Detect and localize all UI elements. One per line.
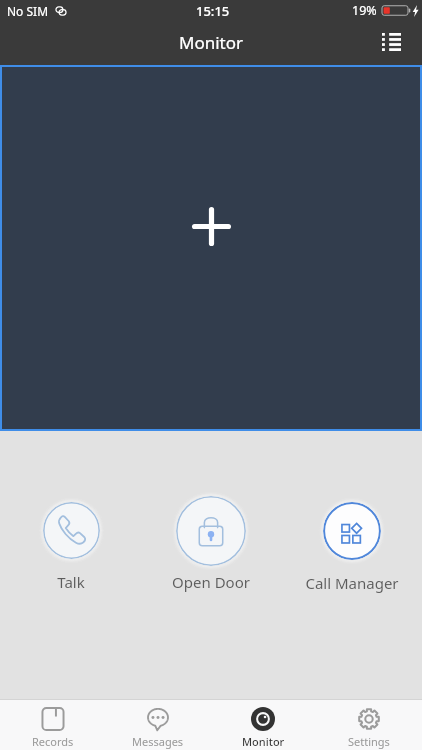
staticText: No SIM (7, 3, 49, 19)
button[interactable]: Add camera (2, 67, 420, 429)
button[interactable]: Open Door (151, 490, 271, 592)
staticText: Records (32, 734, 74, 749)
staticText: Messages (132, 734, 184, 749)
staticText: Call Manager (305, 573, 399, 593)
button[interactable]: Monitor (210, 700, 316, 750)
button[interactable]: Settings (316, 700, 422, 750)
button[interactable]: Talk (11, 496, 131, 592)
staticText: Open Door (172, 572, 250, 592)
button[interactable]: Call Manager (292, 496, 412, 593)
staticText: Monitor (179, 31, 244, 54)
staticText: Settings (348, 734, 390, 749)
staticText: Monitor (242, 734, 285, 749)
button[interactable]: Records (0, 700, 105, 750)
staticText: 15:15 (196, 2, 230, 20)
staticText: 19% (352, 2, 377, 19)
button[interactable]: Messages (105, 700, 210, 750)
staticText: Talk (57, 572, 85, 592)
button[interactable]: List view (375, 26, 407, 58)
